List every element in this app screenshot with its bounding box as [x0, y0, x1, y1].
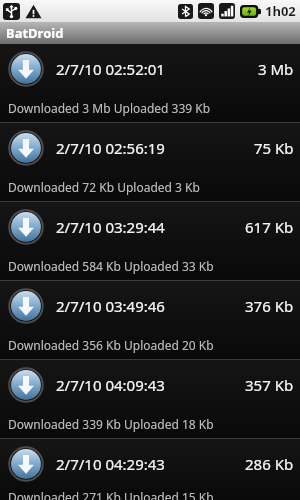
button[interactable]: Download session: [0, 439, 300, 500]
button[interactable]: Download session: [0, 281, 300, 359]
staticText: Downloaded 356 Kb Uploaded 20 Kb: [8, 337, 214, 353]
staticText: 3 Mb: [258, 59, 294, 79]
other: Download session: [8, 288, 44, 324]
other: USB connected: [3, 3, 20, 20]
staticText: Downloaded 584 Kb Uploaded 33 Kb: [8, 258, 214, 274]
staticText: 376 Kb: [245, 296, 294, 316]
button[interactable]: Download session: [0, 44, 300, 122]
other: Download session: [8, 209, 44, 245]
staticText: 357 Kb: [245, 375, 294, 395]
staticText: BatDroid: [6, 24, 64, 42]
button[interactable]: Download session: [0, 123, 300, 201]
staticText: Downloaded 271 Kb Uploaded 15 Kb: [8, 489, 214, 500]
button[interactable]: Download session: [0, 202, 300, 280]
other: Bluetooth: [178, 4, 193, 19]
other: Battery charging: [240, 5, 261, 18]
staticText: 617 Kb: [245, 217, 294, 237]
other: Download session: [8, 446, 44, 482]
other: Download session: [8, 367, 44, 403]
staticText: 2/7/10 04:09:43: [56, 375, 165, 395]
staticText: 286 Kb: [245, 454, 294, 474]
staticText: 2/7/10 04:29:43: [56, 454, 165, 474]
button[interactable]: Download session: [0, 360, 300, 438]
other: Signal: [219, 3, 235, 19]
staticText: 2/7/10 02:56:19: [56, 138, 165, 158]
staticText: Downloaded 339 Kb Uploaded 18 Kb: [8, 416, 214, 432]
staticText: 75 Kb: [254, 138, 294, 158]
staticText: 2/7/10 03:29:44: [56, 217, 165, 237]
other: Wi-Fi: [198, 3, 214, 19]
staticText: Downloaded 72 Kb Uploaded 3 Kb: [8, 179, 200, 195]
staticText: 2/7/10 02:52:01: [56, 59, 165, 79]
other: Warning: [25, 3, 42, 20]
other: Download session: [8, 130, 44, 166]
staticText: 1h02: [265, 2, 296, 20]
other: Download session: [8, 51, 44, 87]
staticText: Downloaded 3 Mb Uploaded 339 Kb: [8, 100, 211, 116]
staticText: 2/7/10 03:49:46: [56, 296, 165, 316]
